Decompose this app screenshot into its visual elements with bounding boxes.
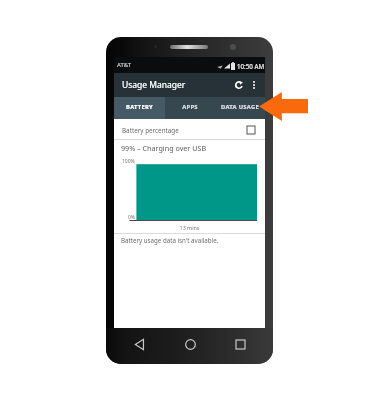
staticText: 13 mins [114,224,265,231]
button[interactable]: More options [247,73,261,97]
staticText: 10:50 AM [237,62,264,70]
staticText: 99% – Charging over USB [121,143,207,153]
staticText: APPS [182,103,198,111]
staticText: Battery usage data isn't available. [121,236,219,244]
staticText: 100% [122,158,135,165]
staticText: AT&T [117,61,131,69]
staticText: DATA USAGE [221,103,259,111]
button[interactable]: APPS [165,97,215,119]
button[interactable]: Refresh [231,73,247,97]
button[interactable]: Recent apps [215,328,265,360]
staticText: Usage Manager [122,79,231,91]
staticText: Battery percentage [122,126,179,135]
button[interactable]: BATTERY [114,97,165,119]
button[interactable]: Back [114,328,165,360]
staticText: 0% [128,214,136,221]
button[interactable]: Home [165,328,215,360]
button[interactable]: Battery percentage [114,119,265,139]
button[interactable]: DATA USAGE [215,97,265,119]
staticText: BATTERY [126,103,153,111]
